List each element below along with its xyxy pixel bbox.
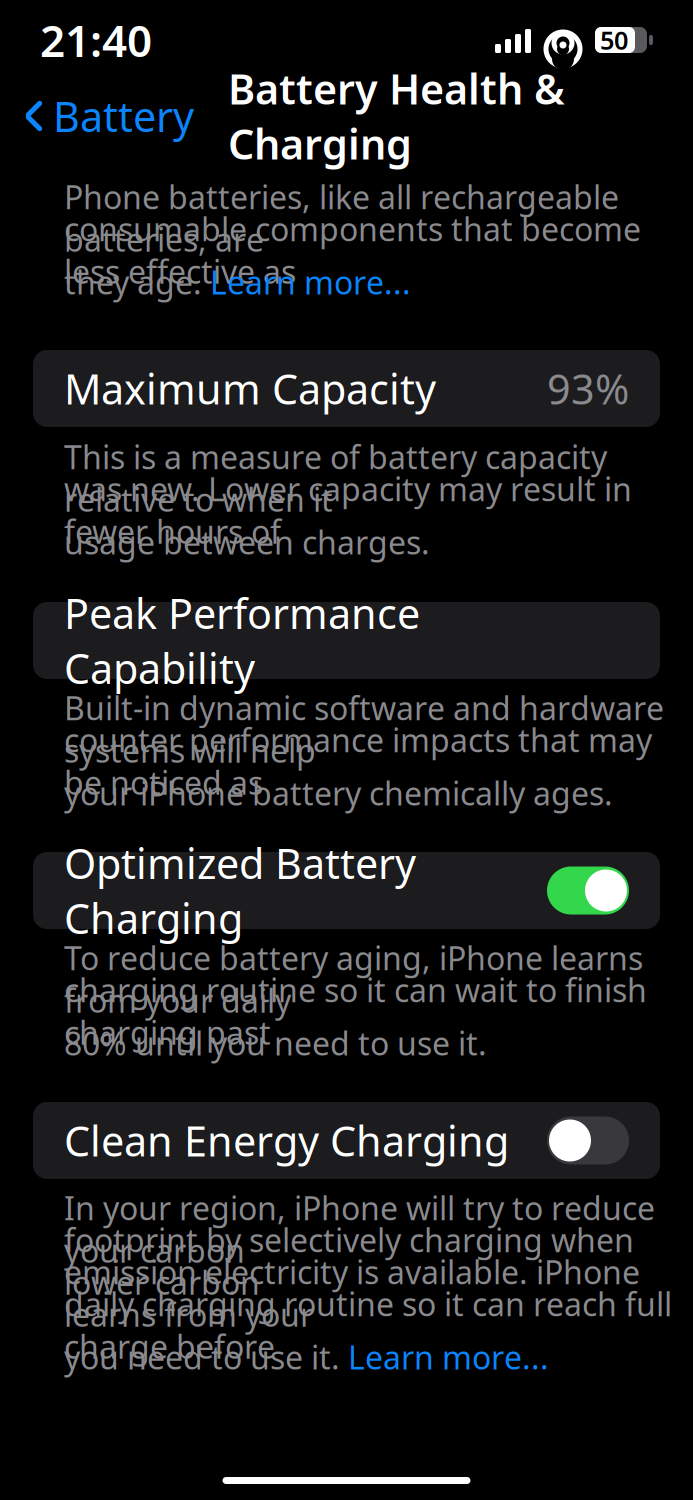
staticText: you need to use it.: [64, 1336, 348, 1378]
staticText: consumable components that become less e…: [64, 207, 641, 292]
staticText: 80% until you need to use it.: [64, 1022, 487, 1064]
staticText: was new. Lower capacity may result in fe…: [64, 467, 632, 552]
staticText: Battery Health & Charging: [228, 61, 565, 171]
button[interactable]: Peak Performance Capability: [33, 602, 660, 679]
staticText: In your region, iPhone will try to reduc…: [64, 1186, 655, 1271]
staticText: Built-in dynamic software and hardware s…: [64, 686, 664, 771]
staticText: Learn more...: [348, 1336, 549, 1378]
staticText: Clean Energy Charging: [64, 1113, 509, 1168]
staticText: usage between charges.: [64, 521, 430, 563]
staticText: To reduce battery aging, iPhone learns f…: [64, 936, 643, 1021]
staticText: Battery: [53, 89, 194, 143]
button[interactable]: Battery: [8, 81, 210, 151]
button[interactable]: Clean Energy Charging: [33, 1102, 660, 1179]
button[interactable]: Learn more...: [348, 1336, 549, 1378]
staticText: 21:40: [40, 11, 152, 69]
staticText: Phone batteries, like all rechargeable b…: [64, 175, 619, 260]
staticText: footprint by selectively charging when l…: [64, 1218, 634, 1303]
button[interactable]: Maximum Capacity: [33, 350, 660, 427]
staticText: they age.: [64, 261, 210, 303]
staticText: Maximum Capacity: [64, 361, 436, 416]
button[interactable]: Learn more...: [210, 261, 411, 303]
staticText: Learn more...: [210, 261, 411, 303]
staticText: emission electricity is available. iPhon…: [64, 1250, 640, 1335]
staticText: 50: [600, 23, 628, 57]
staticText: This is a measure of battery capacity re…: [64, 435, 607, 520]
staticText: your iPhone battery chemically ages.: [64, 772, 613, 814]
staticText: 93%: [547, 361, 629, 416]
button[interactable]: Optimized Battery Charging: [33, 852, 660, 929]
staticText: Peak Performance Capability: [64, 586, 420, 695]
staticText: Optimized Battery Charging: [64, 836, 416, 945]
staticText: daily charging routine so it can reach f…: [64, 1282, 672, 1367]
staticText: counter performance impacts that may be …: [64, 718, 652, 803]
staticText: charging routine so it can wait to finis…: [64, 968, 647, 1053]
